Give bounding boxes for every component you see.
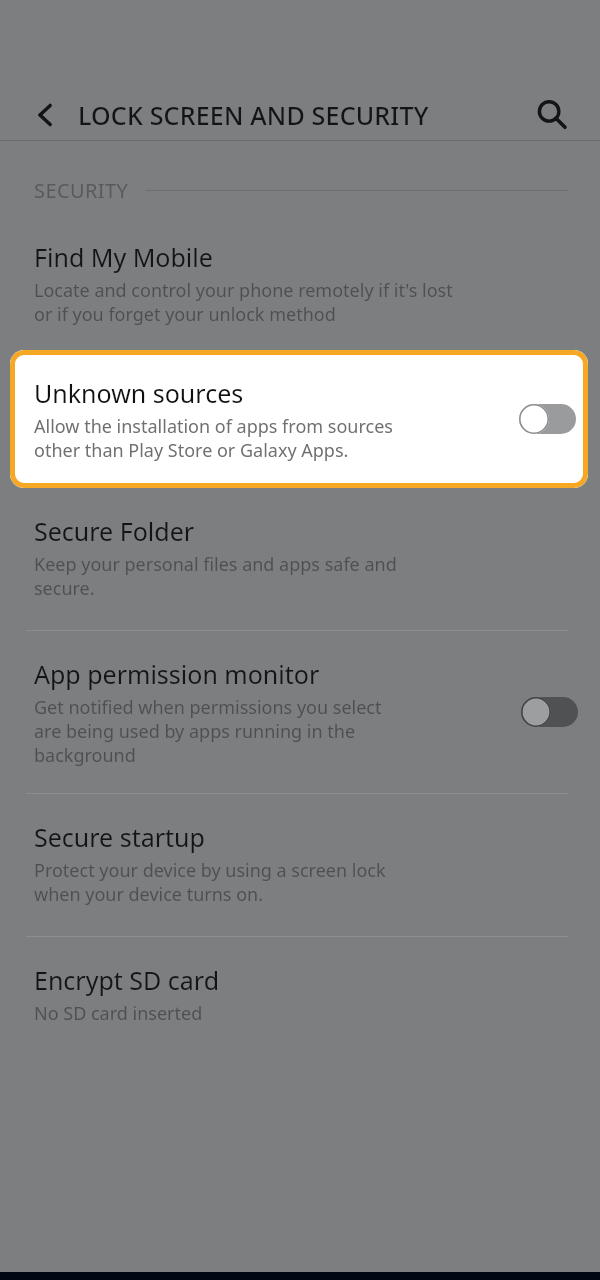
staticText: Encrypt SD card: [34, 963, 220, 997]
button[interactable]: App permission monitor: [0, 657, 600, 767]
button[interactable]: Encrypt SD card: [0, 963, 600, 1026]
staticText: SECURITY: [34, 177, 129, 204]
button[interactable]: Back: [22, 91, 70, 139]
button[interactable]: Toggle, off: [521, 697, 578, 727]
button[interactable]: Unknown sources: [10, 350, 588, 488]
button[interactable]: Toggle, off: [519, 404, 576, 434]
staticText: Allow the installation of apps from sour…: [34, 414, 393, 462]
staticText: Unknown sources: [34, 376, 244, 410]
staticText: Keep your personal files and apps safe a…: [34, 552, 397, 600]
staticText: Find My Mobile: [34, 240, 213, 274]
staticText: App permission monitor: [34, 657, 320, 691]
staticText: Secure Folder: [34, 514, 195, 548]
button[interactable]: Secure startup: [0, 820, 600, 906]
staticText: Protect your device by using a screen lo…: [34, 858, 386, 906]
staticText: Secure startup: [34, 820, 205, 854]
staticText: No SD card inserted: [34, 1001, 203, 1026]
button[interactable]: Find My Mobile: [0, 240, 600, 326]
staticText: LOCK SCREEN AND SECURITY: [78, 98, 526, 132]
staticText: Get notified when permissions you select…: [34, 695, 382, 767]
button[interactable]: Secure Folder: [0, 514, 600, 600]
staticText: Locate and control your phone remotely i…: [34, 278, 453, 326]
button[interactable]: Search: [526, 89, 578, 141]
